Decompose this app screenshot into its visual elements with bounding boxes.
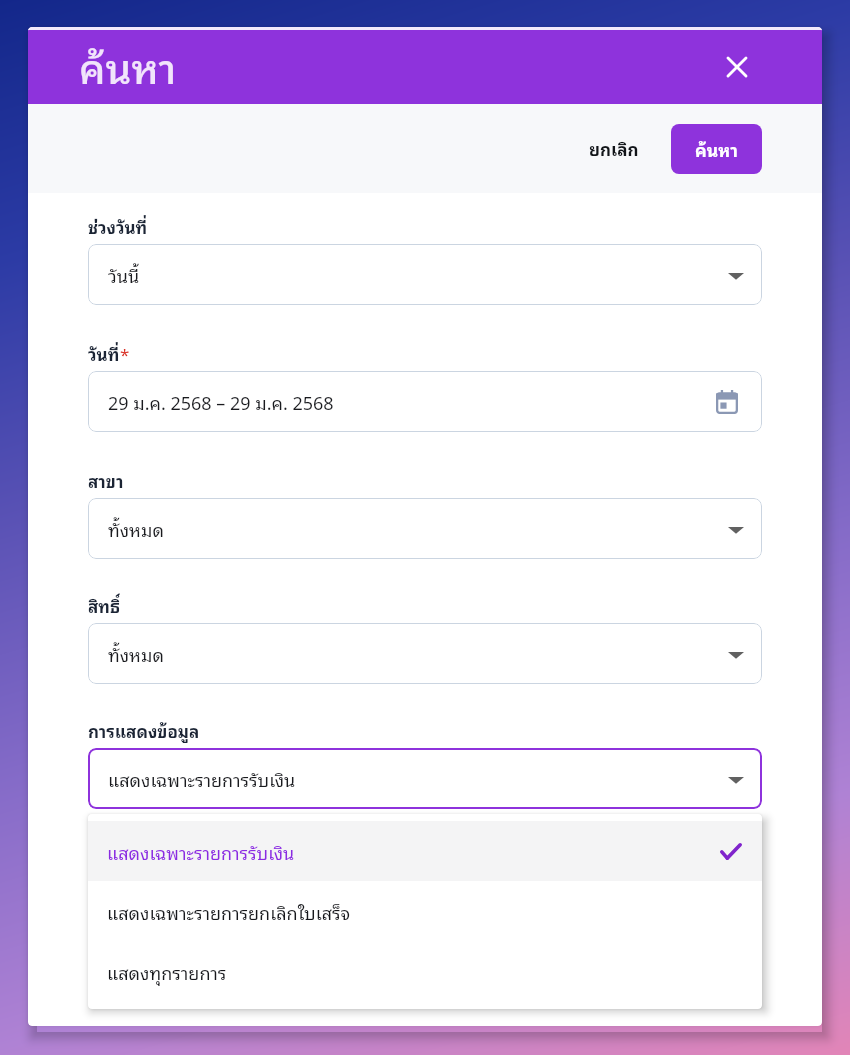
staticText: แสดงเฉพาะรายการรับเงิน <box>107 837 295 866</box>
staticText: ค้นหา <box>79 33 177 99</box>
button[interactable]: 29 ม.ค. 2568 – 29 ม.ค. 2568 <box>88 371 762 432</box>
staticText: * <box>120 340 130 366</box>
staticText: 29 ม.ค. 2568 – 29 ม.ค. 2568 <box>108 387 334 416</box>
other: Pick date <box>716 390 738 414</box>
button[interactable]: Close <box>718 48 756 86</box>
button[interactable]: วันนี้ <box>88 244 762 305</box>
staticText: ช่วงวันที่ <box>88 213 148 239</box>
staticText: แสดงทุกรายการ <box>107 957 227 986</box>
staticText: แสดงเฉพาะรายการยกเลิกใบเสร็จ <box>107 897 351 926</box>
button[interactable]: แสดงเฉพาะรายการยกเลิกใบเสร็จ <box>88 881 762 941</box>
button[interactable]: แสดงทุกรายการ <box>88 941 762 1001</box>
staticText: ยกเลิก <box>589 135 639 162</box>
button[interactable]: แสดงเฉพาะรายการรับเงิน <box>88 821 762 881</box>
button[interactable]: ทั้งหมด <box>88 498 762 559</box>
button[interactable]: ค้นหา <box>671 124 762 174</box>
staticText: วันที่ <box>88 340 120 366</box>
staticText: สาขา <box>88 467 124 493</box>
staticText: ทั้งหมด <box>108 514 164 543</box>
button[interactable]: ยกเลิก <box>579 125 649 172</box>
staticText: สิทธิ์ <box>88 592 120 618</box>
staticText: ค้นหา <box>695 135 738 163</box>
staticText: การแสดงข้อมูล <box>88 717 200 743</box>
staticText: วันนี้ <box>108 260 140 289</box>
button[interactable]: แสดงเฉพาะรายการรับเงิน <box>88 748 762 809</box>
staticText: ทั้งหมด <box>108 639 164 668</box>
button[interactable]: ทั้งหมด <box>88 623 762 684</box>
staticText: แสดงเฉพาะรายการรับเงิน <box>108 764 296 793</box>
